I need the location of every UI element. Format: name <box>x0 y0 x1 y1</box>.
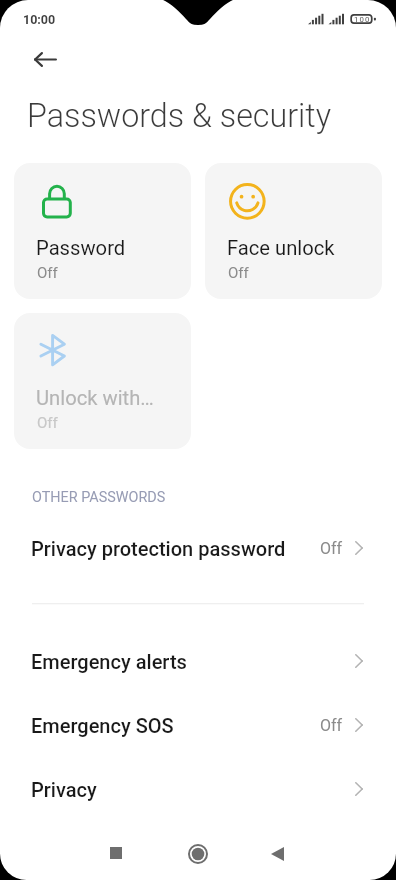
button[interactable]: Back <box>253 830 301 878</box>
staticText: Off <box>37 264 58 282</box>
staticText: Privacy <box>31 778 97 801</box>
button[interactable]: Privacy protection password <box>0 516 396 580</box>
button[interactable]: Emergency SOS <box>0 693 396 757</box>
staticText: OTHER PASSWORDS <box>32 489 166 506</box>
button[interactable]: Back <box>21 35 69 83</box>
button[interactable]: Unlock with… <box>14 313 191 449</box>
staticText: Passwords & security <box>27 97 332 135</box>
staticText: Privacy protection password <box>31 537 286 560</box>
staticText: Unlock with… <box>36 386 154 410</box>
staticText: 10:00 <box>23 12 56 27</box>
staticText: Emergency alerts <box>31 650 187 673</box>
staticText: Off <box>320 539 343 558</box>
staticText: Off <box>320 716 343 735</box>
staticText: 100 <box>354 15 371 24</box>
button[interactable]: Recent apps <box>92 829 140 877</box>
staticText: Face unlock <box>227 236 335 260</box>
staticText: Off <box>228 264 249 282</box>
button[interactable]: Face unlock <box>205 163 382 299</box>
button[interactable]: Privacy <box>0 757 396 821</box>
staticText: Off <box>37 414 58 432</box>
button[interactable]: Password <box>14 163 191 299</box>
button[interactable]: Home <box>174 830 222 878</box>
staticText: Emergency SOS <box>31 714 174 737</box>
button[interactable]: Emergency alerts <box>0 629 396 693</box>
staticText: Password <box>36 236 126 260</box>
